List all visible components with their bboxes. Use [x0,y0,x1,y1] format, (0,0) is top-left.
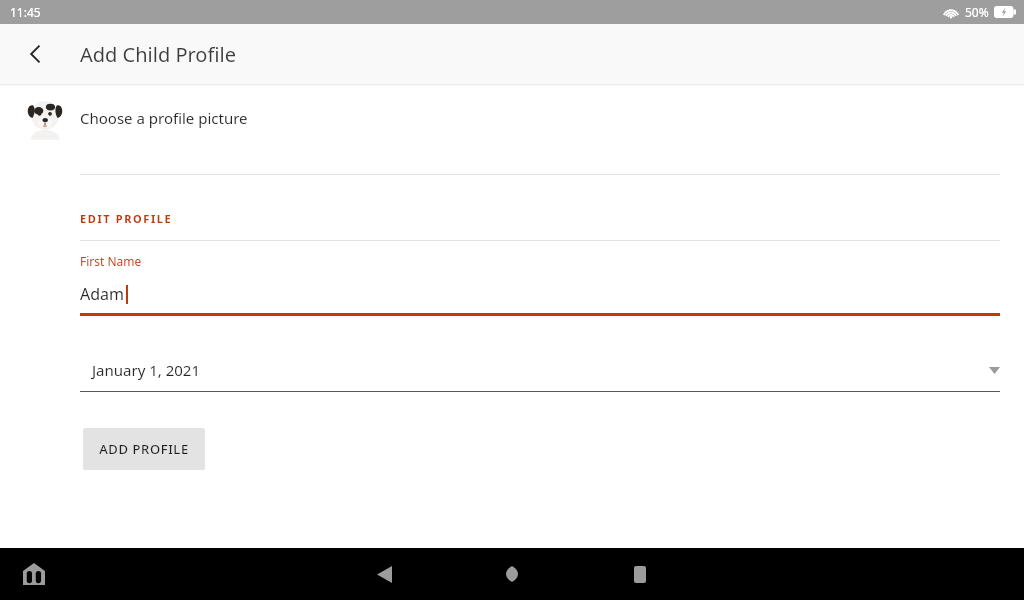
staticText: Adam [80,283,125,305]
button[interactable]: First Name [0,253,1024,316]
staticText: First Name [80,253,142,269]
button[interactable]: Choose a profile picture [0,86,1024,150]
staticText: ADD PROFILE [99,440,189,458]
button[interactable]: Kids Home [14,554,54,594]
button[interactable]: January 1, 2021 [0,360,1024,392]
staticText: Choose a profile picture [80,108,248,128]
button[interactable]: ADD PROFILE [83,428,205,470]
button[interactable]: Back [14,32,58,76]
button[interactable]: Back [358,548,410,600]
staticText: January 1, 2021 [92,360,201,380]
button[interactable]: Recent apps [614,548,666,600]
staticText: EDIT PROFILE [80,211,173,226]
staticText: 11:45 [10,4,41,20]
button[interactable]: Home [486,548,538,600]
staticText: 50% [965,4,989,20]
staticText: Add Child Profile [80,41,236,68]
